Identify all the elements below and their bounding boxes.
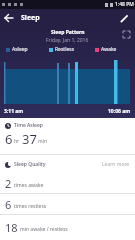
staticText: Asleep	[12, 46, 28, 53]
staticText: min awake / restless	[20, 226, 68, 233]
staticText: 6	[5, 197, 12, 212]
staticText: Restless	[55, 46, 75, 53]
staticText: 1:48 PM	[115, 1, 134, 8]
staticText: 3:11 am	[4, 108, 24, 115]
button[interactable]: Time Asleep	[5, 122, 43, 129]
staticText: min	[38, 138, 48, 145]
button[interactable]: Sleep Quality	[5, 161, 130, 168]
staticText: 2	[5, 176, 12, 191]
staticText: 37	[22, 130, 37, 148]
staticText: times restless	[14, 203, 47, 210]
staticText: Sleep Quality	[14, 161, 46, 168]
staticText: 6	[5, 130, 13, 148]
staticText: Awake	[101, 46, 117, 53]
staticText: Learn more	[102, 161, 130, 168]
button[interactable]	[5, 14, 13, 22]
staticText: times awake	[14, 182, 44, 189]
staticText: Sleep	[21, 13, 40, 23]
button[interactable]	[121, 15, 128, 22]
staticText: 10:06 am	[108, 108, 131, 115]
staticText: hr	[14, 138, 20, 145]
button[interactable]	[123, 31, 130, 38]
staticText: Sleep Pattern	[51, 29, 85, 36]
staticText: Time Asleep	[14, 122, 43, 129]
staticText: Friday, Jan 1, 2016	[46, 37, 89, 44]
staticText: 18	[5, 220, 18, 235]
